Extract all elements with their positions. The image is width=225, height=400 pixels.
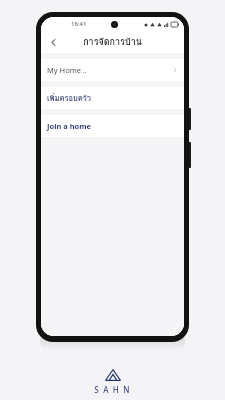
button[interactable]: Back xyxy=(44,33,62,51)
staticText: S A H N xyxy=(94,384,131,395)
staticText: การจัดการบ้าน xyxy=(83,35,142,49)
staticText: Join a home xyxy=(47,121,178,131)
button[interactable]: เพิ่มครอบครัว xyxy=(41,87,184,109)
button[interactable]: My Home .. xyxy=(41,59,184,81)
staticText: 16:41 xyxy=(71,20,87,28)
button[interactable]: Join a home xyxy=(41,115,184,137)
staticText: My Home .. xyxy=(47,65,172,75)
staticText: เพิ่มครอบครัว xyxy=(47,92,178,104)
